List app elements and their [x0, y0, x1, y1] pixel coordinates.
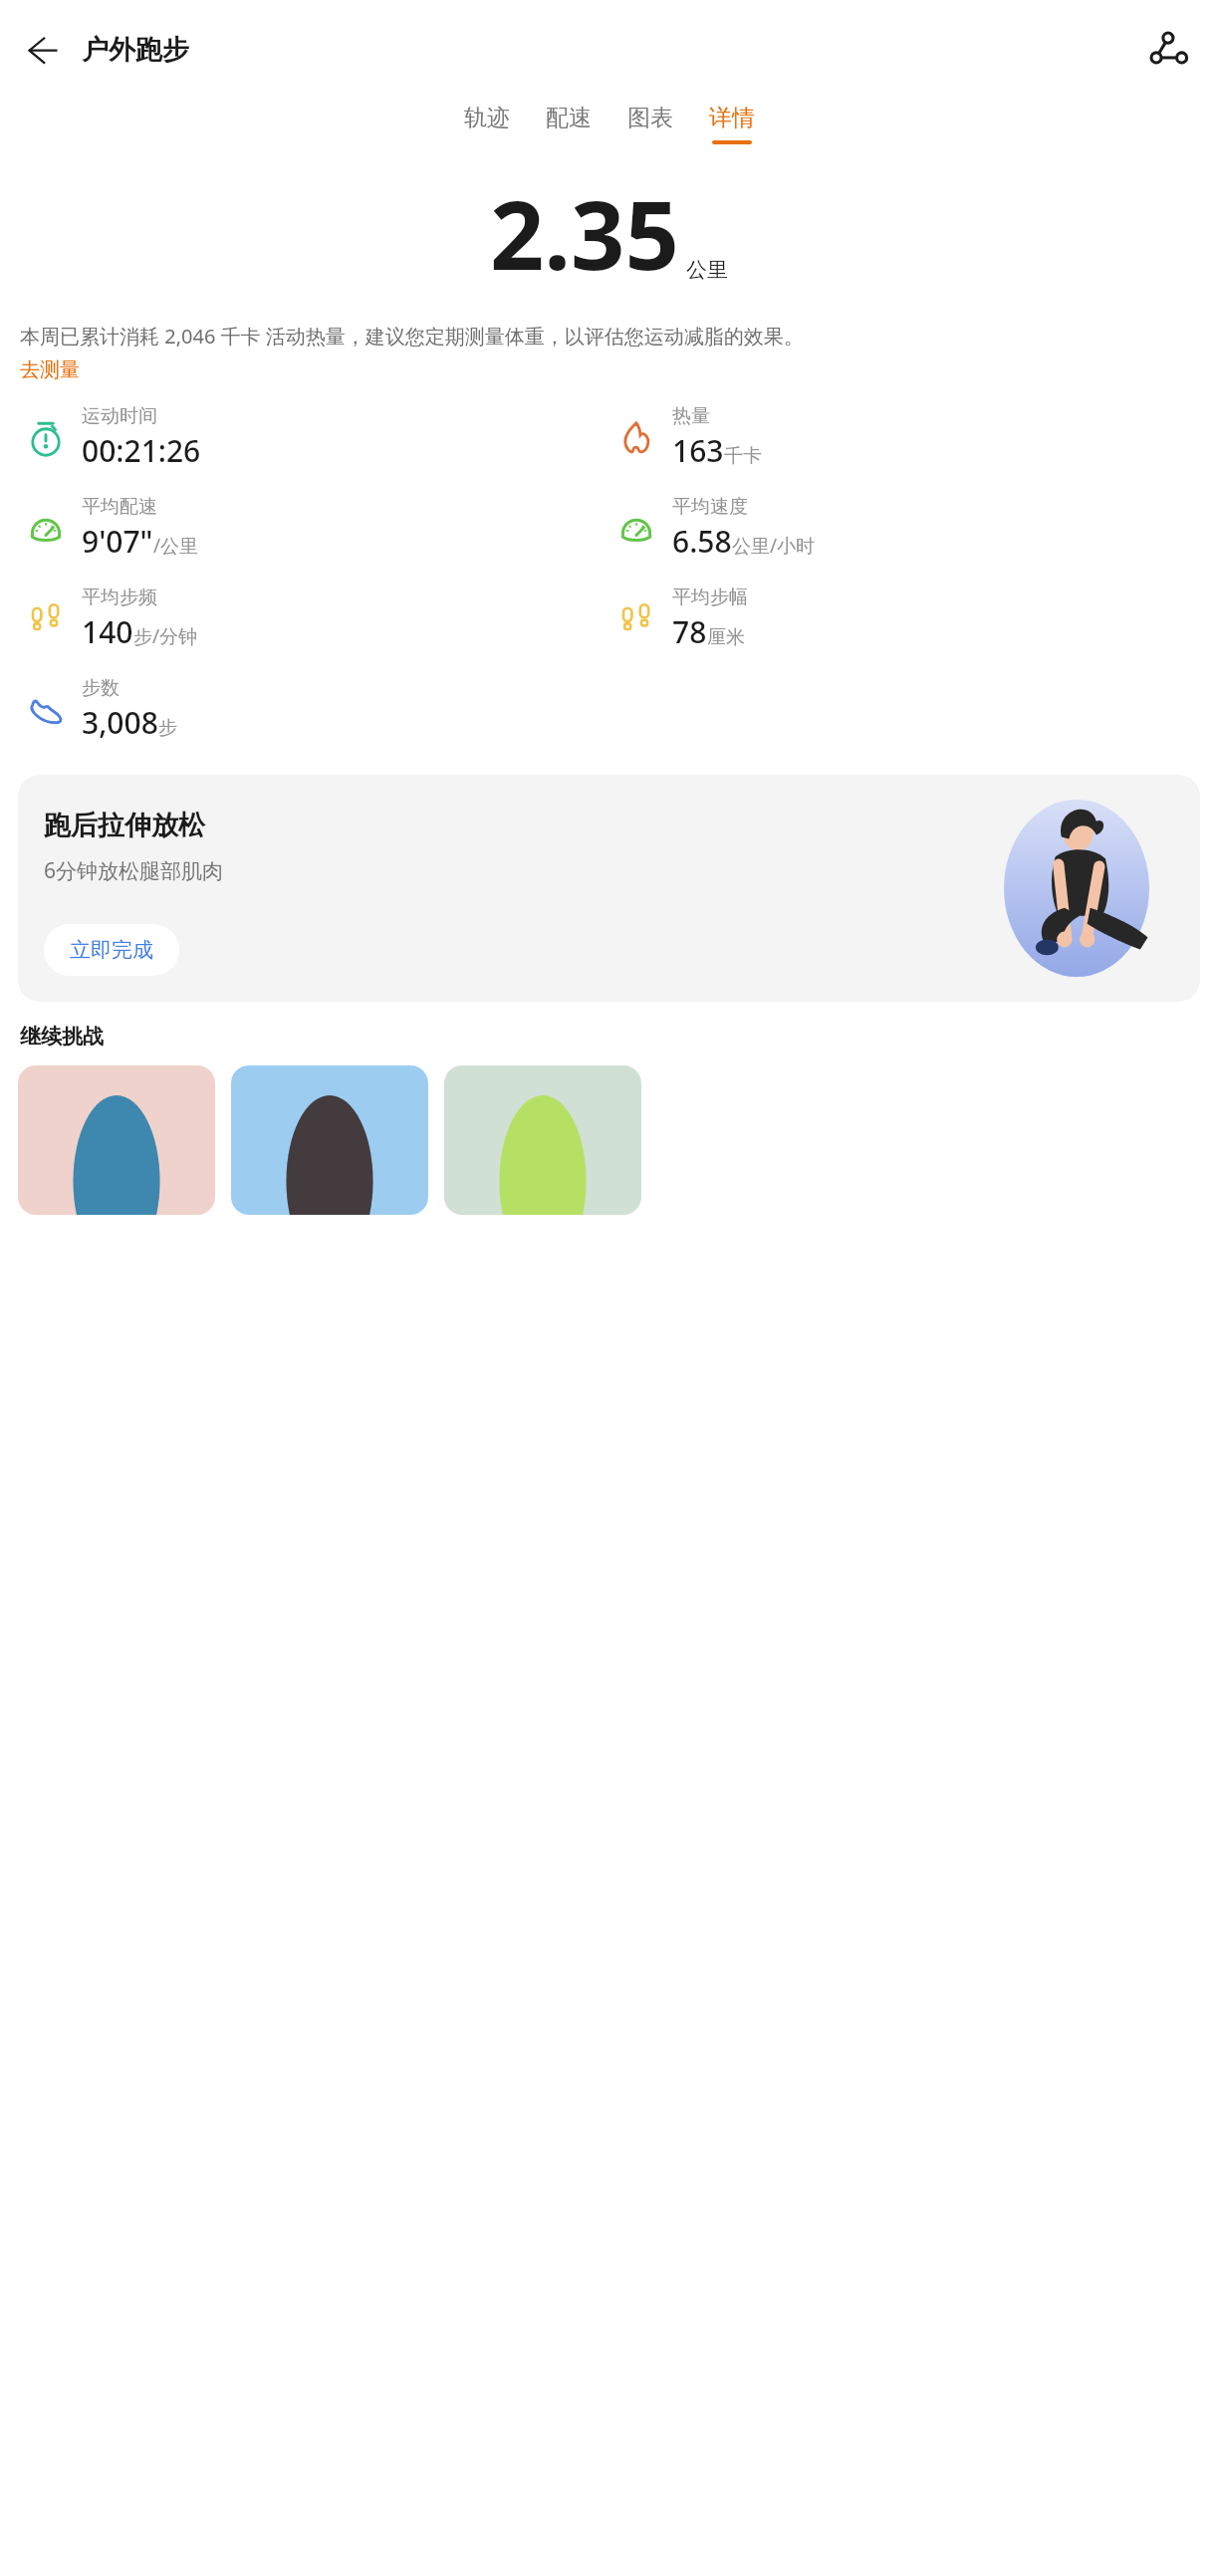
staticText: 78 — [672, 611, 707, 652]
staticText: 平均步幅 — [672, 585, 748, 609]
staticText: 3,008 — [82, 702, 158, 743]
button[interactable] — [444, 1065, 641, 1215]
button[interactable]: 轨迹 — [446, 100, 528, 148]
staticText: 6.58 — [672, 521, 732, 562]
staticText: 平均速度 — [672, 495, 748, 519]
staticText: 步/分钟 — [133, 623, 198, 649]
staticText: 厘米 — [707, 625, 745, 649]
button[interactable]: 配速 — [528, 100, 609, 148]
staticText: 9'07" — [82, 521, 153, 562]
staticText: 去测量 — [20, 357, 80, 382]
staticText: 140 — [82, 611, 133, 652]
staticText: 立即完成 — [70, 937, 153, 963]
staticText: 运动时间 — [82, 404, 157, 428]
button[interactable]: 去测量 — [20, 357, 80, 382]
staticText: 继续挑战 — [20, 1024, 104, 1050]
staticText: 步数 — [82, 676, 120, 700]
staticText: 详情 — [709, 104, 755, 132]
staticText: 本周已累计消耗 2,046 千卡 活动热量，建议您定期测量体重，以评估您运动减脂… — [20, 323, 804, 350]
button[interactable]: 热量 — [609, 404, 1200, 471]
staticText: 热量 — [672, 404, 710, 428]
button[interactable]: Back — [10, 19, 72, 81]
button[interactable]: 平均配速 — [18, 495, 609, 562]
staticText: /公里 — [153, 533, 199, 559]
button[interactable]: 运动时间 — [18, 404, 609, 471]
staticText: 00:21:26 — [82, 430, 201, 471]
button[interactable]: 立即完成 — [44, 924, 179, 976]
staticText: 千卡 — [724, 444, 762, 468]
button[interactable]: 平均步幅 — [609, 585, 1200, 652]
staticText: 公里/小时 — [732, 533, 816, 559]
button[interactable] — [18, 1065, 215, 1215]
staticText: 跑后拉伸放松 — [44, 809, 205, 842]
button[interactable]: Share — [1138, 19, 1200, 81]
button[interactable] — [231, 1065, 428, 1215]
staticText: 平均配速 — [82, 495, 157, 519]
button[interactable]: 步数 — [18, 676, 609, 743]
staticText: 6分钟放松腿部肌肉 — [44, 856, 224, 885]
staticText: 163 — [672, 430, 724, 471]
staticText: 2.35 — [490, 168, 679, 297]
staticText: 配速 — [546, 104, 592, 132]
staticText: 公里 — [686, 257, 728, 283]
button[interactable]: 图表 — [609, 100, 691, 148]
staticText: 轨迹 — [464, 104, 510, 132]
staticText: 户外跑步 — [82, 33, 189, 67]
staticText: 步 — [158, 716, 177, 740]
button[interactable]: 平均步频 — [18, 585, 609, 652]
staticText: 图表 — [627, 104, 673, 132]
button[interactable]: 详情 — [691, 100, 773, 148]
button[interactable]: 平均速度 — [609, 495, 1200, 562]
staticText: 平均步频 — [82, 585, 157, 609]
button[interactable]: 跑后拉伸放松 — [18, 775, 1200, 1002]
